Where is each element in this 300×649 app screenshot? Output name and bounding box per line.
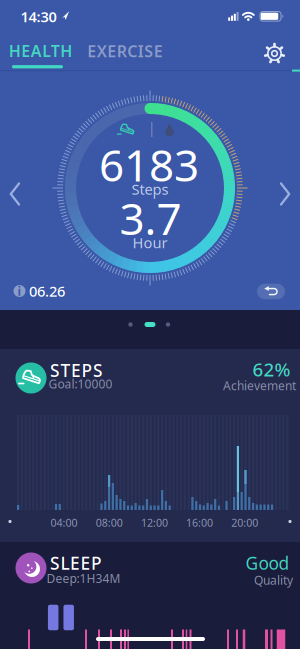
staticText: 08:00 <box>96 515 123 530</box>
staticText: 20:00 <box>231 515 258 530</box>
staticText: 14:30 <box>20 7 56 26</box>
staticText: i <box>17 283 21 299</box>
staticText: 62% <box>252 357 290 382</box>
staticText: STEPS <box>50 359 103 382</box>
button[interactable] <box>270 177 300 211</box>
staticText: EXERCISE <box>87 40 163 62</box>
staticText: Good <box>245 551 289 574</box>
button[interactable] <box>257 284 285 299</box>
staticText: 12:00 <box>141 515 168 530</box>
staticText: 06.26 <box>29 281 65 301</box>
button[interactable] <box>0 177 30 211</box>
staticText: SLEEP <box>50 551 102 574</box>
staticText: Deep:1H34M <box>46 570 120 586</box>
staticText: 16:00 <box>186 515 213 530</box>
staticText: Hour <box>132 233 167 252</box>
staticText: Achievement <box>223 377 296 393</box>
staticText: HEALTH <box>9 40 72 61</box>
staticText: 6183 <box>99 135 199 194</box>
button[interactable] <box>257 36 291 70</box>
staticText: 3.7 <box>119 189 181 247</box>
staticText: Quality <box>254 572 293 588</box>
button[interactable]: EXERCISE <box>80 37 170 65</box>
button[interactable]: HEALTH <box>6 38 76 72</box>
staticText: Steps <box>131 179 168 199</box>
staticText: 04:00 <box>50 515 77 530</box>
staticText: Goal:10000 <box>48 376 112 392</box>
